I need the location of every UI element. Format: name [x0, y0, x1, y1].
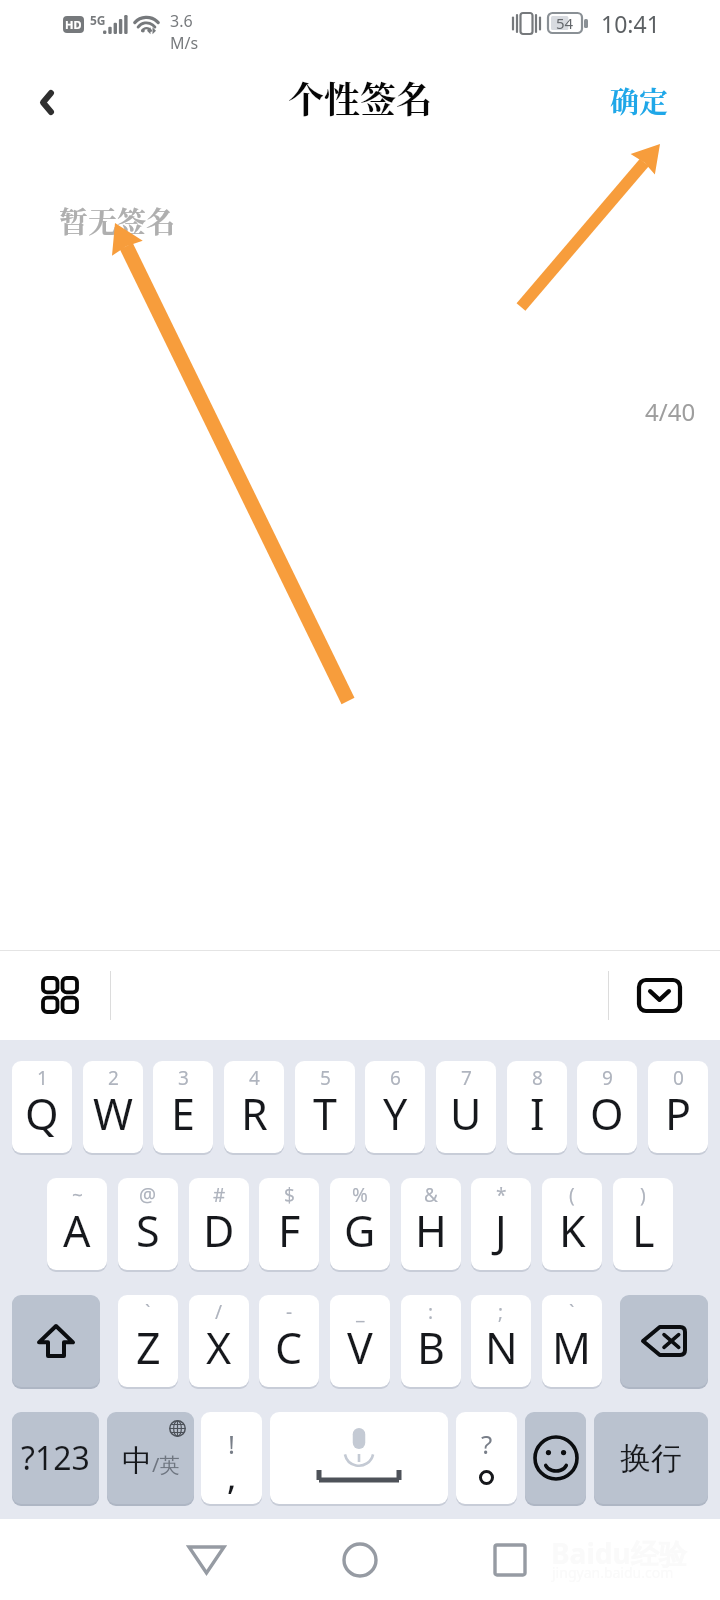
- button[interactable]: !: [201, 1412, 262, 1504]
- staticText: 5: [320, 1065, 331, 1091]
- button[interactable]: ?: [456, 1412, 517, 1504]
- staticText: Y: [383, 1084, 408, 1143]
- button[interactable]: ?123: [12, 1412, 99, 1504]
- button[interactable]: -: [259, 1295, 319, 1387]
- button[interactable]: Emoji: [525, 1412, 586, 1504]
- button[interactable]: Hide keyboard: [639, 980, 680, 1011]
- button[interactable]: ): [613, 1178, 673, 1270]
- staticText: 个性签名: [288, 72, 433, 124]
- staticText: %: [352, 1182, 368, 1208]
- button[interactable]: $: [259, 1178, 319, 1270]
- staticText: *: [496, 1182, 507, 1208]
- staticText: :: [428, 1299, 434, 1325]
- button[interactable]: 0: [648, 1061, 708, 1153]
- button[interactable]: (: [542, 1178, 602, 1270]
- button[interactable]: Backspace: [620, 1295, 708, 1387]
- button[interactable]: 4: [224, 1061, 284, 1153]
- staticText: 3.6: [170, 10, 193, 32]
- staticText: 3: [178, 1065, 189, 1091]
- staticText: ?: [481, 1426, 493, 1461]
- staticText: Z: [136, 1318, 161, 1377]
- staticText: `: [569, 1299, 575, 1325]
- staticText: /英: [152, 1451, 180, 1478]
- staticText: K: [559, 1201, 586, 1260]
- button[interactable]: ~: [47, 1178, 107, 1270]
- staticText: 4: [249, 1065, 260, 1091]
- staticText: /: [215, 1299, 223, 1325]
- button[interactable]: 2: [83, 1061, 143, 1153]
- staticText: 4/40: [645, 395, 696, 428]
- staticText: A: [63, 1201, 91, 1260]
- button[interactable]: %: [330, 1178, 390, 1270]
- button[interactable]: @: [118, 1178, 178, 1270]
- button[interactable]: 7: [436, 1061, 496, 1153]
- button[interactable]: 3: [153, 1061, 213, 1153]
- staticText: -: [286, 1299, 293, 1325]
- staticText: `: [145, 1299, 151, 1325]
- staticText: ,: [227, 1454, 237, 1500]
- staticText: 暂无签名: [59, 200, 176, 242]
- staticText: G: [344, 1201, 376, 1260]
- button[interactable]: Recents: [435, 1519, 585, 1600]
- staticText: 5G: [90, 12, 106, 28]
- staticText: !: [228, 1426, 235, 1461]
- button[interactable]: 9: [577, 1061, 637, 1153]
- button[interactable]: Keyboard panel: [29, 964, 91, 1026]
- button[interactable]: *: [471, 1178, 531, 1270]
- staticText: F: [278, 1201, 301, 1260]
- button[interactable]: 5: [295, 1061, 355, 1153]
- staticText: 1: [37, 1065, 48, 1091]
- staticText: U: [450, 1084, 482, 1143]
- staticText: L: [632, 1201, 655, 1260]
- button[interactable]: `: [542, 1295, 602, 1387]
- button[interactable]: ;: [471, 1295, 531, 1387]
- staticText: E: [171, 1084, 195, 1143]
- button[interactable]: 8: [507, 1061, 567, 1153]
- staticText: X: [206, 1318, 232, 1377]
- staticText: P: [665, 1084, 692, 1143]
- button[interactable]: 换行: [594, 1412, 708, 1504]
- button[interactable]: 中: [107, 1412, 194, 1504]
- staticText: O: [590, 1084, 624, 1143]
- staticText: N: [485, 1318, 518, 1377]
- staticText: 确定: [610, 80, 669, 122]
- button[interactable]: /: [189, 1295, 249, 1387]
- staticText: HD: [65, 17, 82, 32]
- staticText: M: [552, 1318, 592, 1377]
- button[interactable]: 1: [12, 1061, 72, 1153]
- button[interactable]: 确定: [582, 60, 697, 144]
- button[interactable]: Shift: [12, 1295, 100, 1387]
- button[interactable]: Space: [270, 1412, 448, 1504]
- staticText: 8: [532, 1065, 543, 1091]
- button[interactable]: :: [401, 1295, 461, 1387]
- staticText: T: [313, 1084, 337, 1143]
- staticText: 2: [108, 1065, 119, 1091]
- staticText: _: [356, 1299, 365, 1325]
- staticText: Q: [25, 1084, 59, 1143]
- button[interactable]: Home: [285, 1519, 435, 1600]
- button[interactable]: Back: [3, 60, 91, 144]
- staticText: D: [203, 1201, 235, 1260]
- button[interactable]: &: [401, 1178, 461, 1270]
- staticText: ?123: [21, 1436, 90, 1480]
- staticText: 换行: [620, 1439, 682, 1478]
- button[interactable]: _: [330, 1295, 390, 1387]
- staticText: W: [93, 1084, 133, 1143]
- staticText: ~: [72, 1182, 83, 1208]
- button[interactable]: Back: [131, 1519, 281, 1600]
- button[interactable]: #: [189, 1178, 249, 1270]
- staticText: J: [495, 1201, 507, 1260]
- staticText: 7: [461, 1065, 472, 1091]
- staticText: &: [424, 1182, 438, 1208]
- staticText: #: [213, 1182, 226, 1208]
- staticText: 54: [556, 13, 574, 33]
- staticText: S: [136, 1201, 160, 1260]
- button[interactable]: `: [118, 1295, 178, 1387]
- staticText: 10:41: [601, 8, 660, 39]
- staticText: 9: [602, 1065, 613, 1091]
- button[interactable]: 6: [365, 1061, 425, 1153]
- staticText: H: [415, 1201, 447, 1260]
- staticText: B: [417, 1318, 445, 1377]
